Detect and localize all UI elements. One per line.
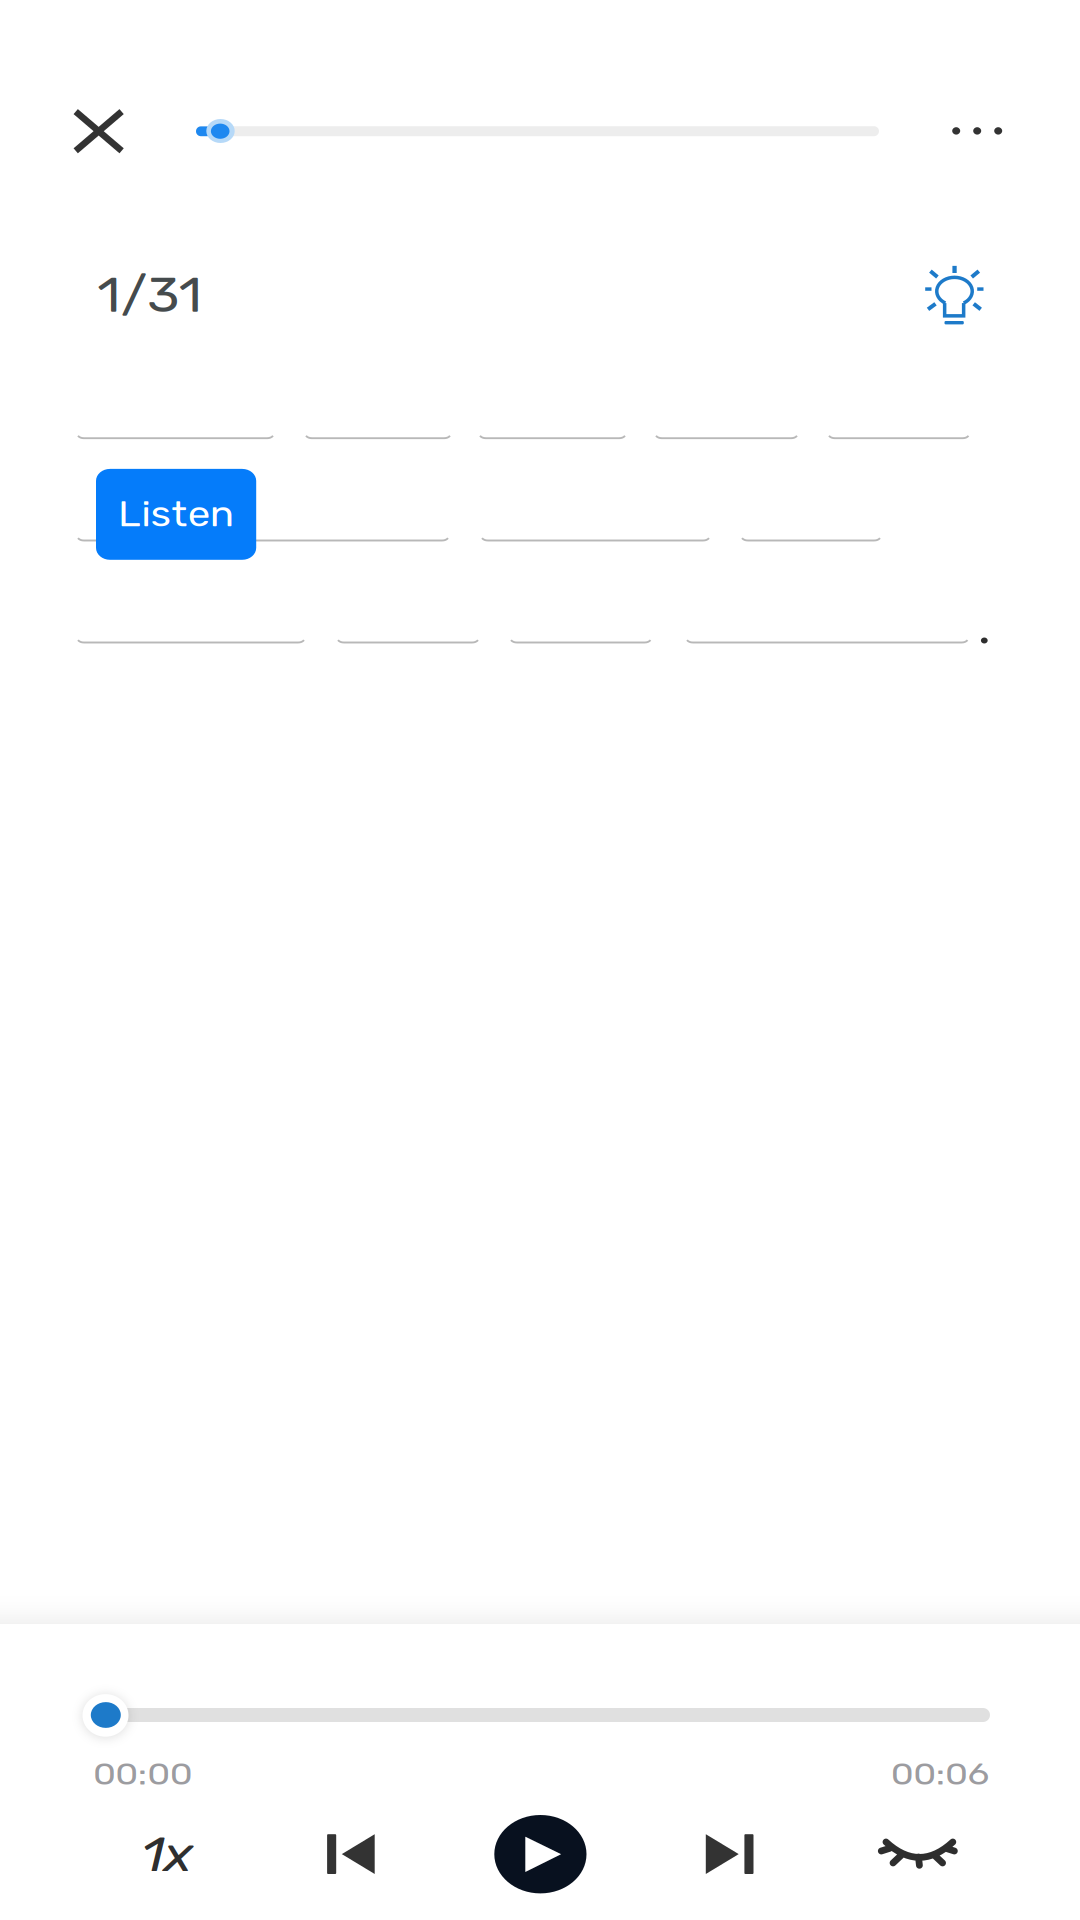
button[interactable]: Lesson progress: [196, 114, 879, 148]
button[interactable]: Audio position: [63, 1693, 1013, 1737]
staticText: 00:06: [898, 1756, 981, 1792]
staticText: 1/31: [103, 267, 196, 324]
button[interactable]: Listen: [96, 469, 256, 560]
button[interactable]: Hide text: [873, 1829, 963, 1879]
button[interactable]: Show hint: [914, 255, 994, 335]
staticText: 00:00: [100, 1756, 184, 1792]
staticText: 1x: [144, 1827, 190, 1883]
button[interactable]: More options: [941, 95, 1013, 167]
staticText: Listen: [126, 494, 226, 535]
button[interactable]: 1x: [112, 1807, 222, 1903]
button[interactable]: Close: [59, 95, 139, 168]
button[interactable]: Next sentence: [699, 1824, 759, 1884]
button[interactable]: Play: [490, 1810, 590, 1898]
button[interactable]: Previous sentence: [321, 1824, 381, 1884]
